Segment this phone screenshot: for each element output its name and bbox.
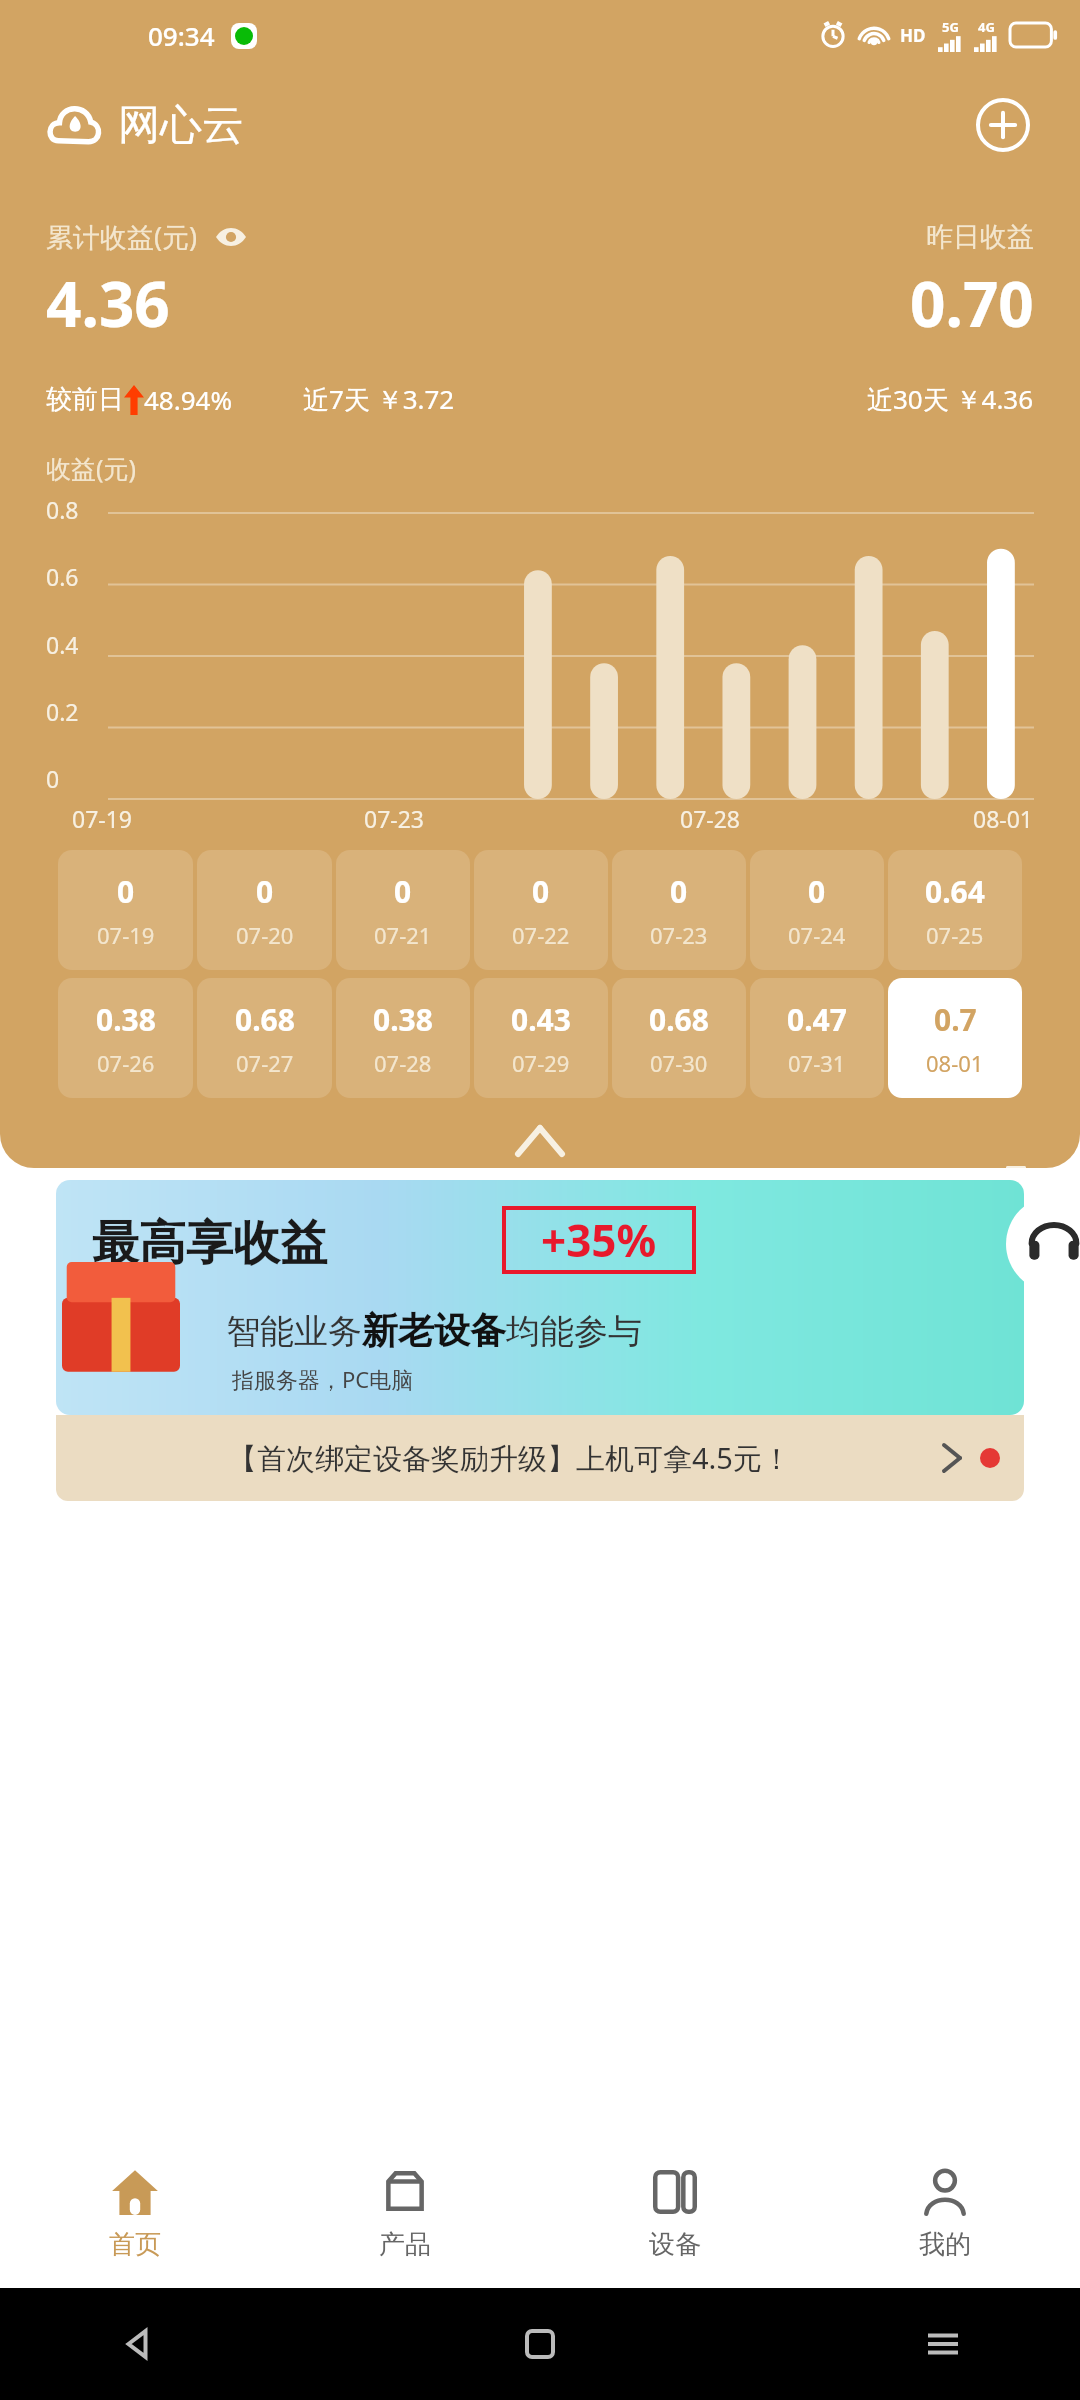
staticText: 均能参与	[506, 1310, 642, 1353]
staticText: 08-01	[926, 1048, 984, 1078]
button[interactable]: 0.47	[750, 978, 884, 1098]
button[interactable]: Add device	[972, 94, 1034, 156]
button[interactable]: 0.38	[58, 978, 193, 1098]
button[interactable]: 0	[750, 850, 884, 970]
staticText: 0	[256, 871, 274, 912]
staticText: 0.64	[925, 871, 985, 912]
button[interactable]: 0.7	[888, 978, 1022, 1098]
staticText: 0	[808, 871, 826, 912]
button[interactable]: 0.43	[474, 978, 608, 1098]
staticText: 0	[394, 871, 412, 912]
staticText: 0.43	[511, 999, 571, 1040]
staticText: 0.2	[46, 696, 79, 727]
button[interactable]: 设备	[540, 2138, 810, 2288]
button[interactable]: 0.64	[888, 850, 1022, 970]
button[interactable]: 我的	[810, 2138, 1080, 2288]
staticText: 07-25	[926, 920, 984, 950]
staticText: 我的	[919, 2228, 971, 2261]
staticText: 0.47	[787, 999, 847, 1040]
staticText: 0.38	[96, 999, 156, 1040]
other: Back	[120, 2327, 154, 2361]
staticText: 07-21	[374, 920, 432, 950]
button[interactable]: 0	[336, 850, 470, 970]
staticText: 0.6	[46, 561, 79, 592]
staticText: 07-19	[97, 920, 155, 950]
staticText: 0	[117, 871, 135, 912]
staticText: 0	[46, 763, 60, 794]
staticText: 智能业务	[226, 1310, 362, 1353]
staticText: 较前日	[46, 383, 124, 416]
staticText: 07-31	[788, 1048, 846, 1078]
staticText: 07-30	[650, 1048, 708, 1078]
button[interactable]: 首页	[0, 2138, 270, 2288]
staticText: 指服务器，PC电脑	[232, 1364, 414, 1394]
staticText: 07-28	[680, 803, 741, 834]
staticText: 近30天 ￥4.36	[867, 381, 1034, 417]
staticText: 07-20	[236, 920, 294, 950]
staticText: 5G	[942, 18, 959, 36]
other: Home	[523, 2327, 557, 2361]
staticText: 09:34	[148, 18, 215, 53]
button[interactable]: 0.68	[612, 978, 746, 1098]
staticText: 昨日收益	[926, 220, 1034, 254]
staticText: 网心云	[118, 99, 244, 152]
button[interactable]: 累计收益(元)	[46, 218, 246, 255]
staticText: 0.8	[46, 494, 79, 525]
staticText: 07-23	[364, 803, 425, 834]
staticText: 07-28	[374, 1048, 432, 1078]
staticText: HD	[900, 24, 926, 47]
button[interactable]: Collapse	[0, 1114, 1080, 1168]
staticText: 48.94%	[144, 382, 233, 417]
staticText: +35%	[541, 1210, 657, 1270]
staticText: 0.70	[910, 261, 1034, 345]
staticText: 07-23	[650, 920, 708, 950]
button[interactable]: 产品	[270, 2138, 540, 2288]
staticText: 首页	[109, 2228, 161, 2261]
staticText: 近7天 ￥3.72	[303, 381, 455, 417]
button[interactable]: 最高享收益	[56, 1180, 1024, 1415]
staticText: 0	[670, 871, 688, 912]
staticText: 07-27	[236, 1048, 294, 1078]
other: Recents	[926, 2327, 960, 2361]
staticText: 累计收益(元)	[46, 218, 198, 255]
staticText: 0.38	[373, 999, 433, 1040]
button[interactable]: 【首次绑定设备奖励升级】上机可拿4.5元！	[80, 1415, 1000, 1501]
staticText: 07-19	[72, 803, 133, 834]
staticText: 07-26	[97, 1048, 155, 1078]
staticText: 0.7	[934, 999, 977, 1040]
staticText: 07-24	[788, 920, 846, 950]
button[interactable]: Customer service	[1006, 1196, 1080, 1292]
staticText: 08-01	[973, 803, 1034, 834]
staticText: 设备	[649, 2228, 701, 2261]
staticText: 07-29	[512, 1048, 570, 1078]
staticText: 最高享收益	[92, 1214, 327, 1273]
staticText: 07-22	[512, 920, 570, 950]
button[interactable]: 0	[474, 850, 608, 970]
button[interactable]: 0	[58, 850, 193, 970]
staticText: 0.4	[46, 629, 79, 660]
button[interactable]: 0	[197, 850, 332, 970]
staticText: 【首次绑定设备奖励升级】上机可拿4.5元！	[228, 1438, 791, 1478]
staticText: 新老设备	[362, 1308, 506, 1353]
staticText: 收益(元)	[46, 451, 137, 485]
staticText: 0	[532, 871, 550, 912]
staticText: 产品	[379, 2228, 431, 2261]
button[interactable]: 0.68	[197, 978, 332, 1098]
staticText: 4.36	[46, 261, 170, 345]
button[interactable]: 0.38	[336, 978, 470, 1098]
staticText: 4G	[978, 18, 995, 36]
staticText: 0.68	[649, 999, 709, 1040]
button[interactable]: 0	[612, 850, 746, 970]
staticText: 0.68	[235, 999, 295, 1040]
